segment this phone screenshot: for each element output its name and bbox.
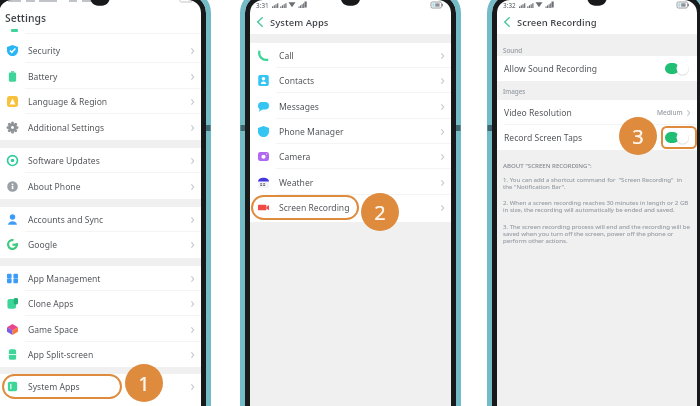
button[interactable]: Security xyxy=(0,38,201,63)
button[interactable]: System Apps xyxy=(0,374,201,399)
button[interactable]: Record Screen Taps xyxy=(665,131,689,144)
button[interactable]: Allow Sound Recording xyxy=(665,62,689,75)
button[interactable]: Language & Region xyxy=(0,89,201,114)
staticText: Additional Settings xyxy=(28,122,105,134)
staticText: Accounts and Sync xyxy=(28,214,104,226)
staticText: Record Screen Taps xyxy=(504,132,583,144)
button[interactable]: Video Resolution xyxy=(497,100,697,125)
button[interactable]: 2 xyxy=(361,193,399,231)
staticText: 3:32 xyxy=(503,1,516,10)
staticText: Sound xyxy=(503,46,523,55)
button[interactable]: Contacts xyxy=(250,68,451,93)
staticText: ABOUT "SCREEN RECORDING": xyxy=(503,161,592,169)
staticText: Google xyxy=(28,239,58,251)
button[interactable]: Phone Manager xyxy=(250,119,451,144)
staticText: 3. The screen recording process will end… xyxy=(503,222,693,245)
staticText: Software Updates xyxy=(28,155,100,167)
staticText: 2 xyxy=(374,199,386,226)
staticText: Allow Sound Recording xyxy=(504,63,597,75)
button[interactable]: Clone Apps xyxy=(0,291,201,316)
staticText: Messages xyxy=(279,101,319,113)
staticText: 1 xyxy=(138,370,150,397)
staticText: Phone Manager xyxy=(279,126,344,138)
button[interactable]: About Phone xyxy=(0,174,201,199)
staticText: Battery xyxy=(28,71,58,83)
button[interactable]: Accounts and Sync xyxy=(0,207,201,232)
button[interactable]: Screen Recording xyxy=(250,195,451,220)
button[interactable]: Google xyxy=(0,232,201,257)
staticText: 2. When a screen recording reaches 30 mi… xyxy=(503,198,693,214)
button[interactable]: Weather xyxy=(250,170,451,195)
staticText: Weather xyxy=(279,177,314,189)
button[interactable]: Software Updates xyxy=(0,148,201,173)
staticText: Clone Apps xyxy=(28,298,74,310)
button[interactable]: App Management xyxy=(0,266,201,291)
staticText: Video Resolution xyxy=(504,107,572,119)
staticText: 3:31 xyxy=(256,1,269,10)
staticText: Game Space xyxy=(28,324,78,336)
staticText: Medium xyxy=(657,108,683,117)
button[interactable]: Back xyxy=(500,10,514,34)
button[interactable]: 1 xyxy=(125,364,163,402)
staticText: Language & Region xyxy=(28,96,108,108)
staticText: Call xyxy=(279,50,294,62)
button[interactable]: Camera xyxy=(250,144,451,169)
button[interactable]: Additional Settings xyxy=(0,115,201,140)
staticText: Screen Recording xyxy=(279,202,350,214)
button[interactable]: App Split-screen xyxy=(0,342,201,367)
staticText: Images xyxy=(503,87,526,96)
button[interactable]: Call xyxy=(250,43,451,68)
staticText: System Apps xyxy=(28,381,80,393)
staticText: Screen Recording xyxy=(517,16,597,29)
staticText: System Apps xyxy=(270,16,329,29)
staticText: Settings xyxy=(5,11,47,25)
button[interactable]: Back xyxy=(253,10,267,34)
button[interactable]: Game Space xyxy=(0,317,201,342)
staticText: 3 xyxy=(632,123,644,150)
staticText: Camera xyxy=(279,151,311,163)
button[interactable]: Messages xyxy=(250,94,451,119)
staticText: App Split-screen xyxy=(28,349,94,361)
button[interactable]: Record Screen Taps xyxy=(497,125,697,150)
button[interactable]: Allow Sound Recording xyxy=(497,56,697,81)
staticText: About Phone xyxy=(28,181,81,193)
staticText: Contacts xyxy=(279,75,315,87)
staticText: Security xyxy=(28,45,61,57)
staticText: 1. You can add a shortcut command for "S… xyxy=(503,175,693,191)
button[interactable]: 3 xyxy=(619,117,657,155)
button[interactable]: Battery xyxy=(0,64,201,89)
staticText: App Management xyxy=(28,273,101,285)
